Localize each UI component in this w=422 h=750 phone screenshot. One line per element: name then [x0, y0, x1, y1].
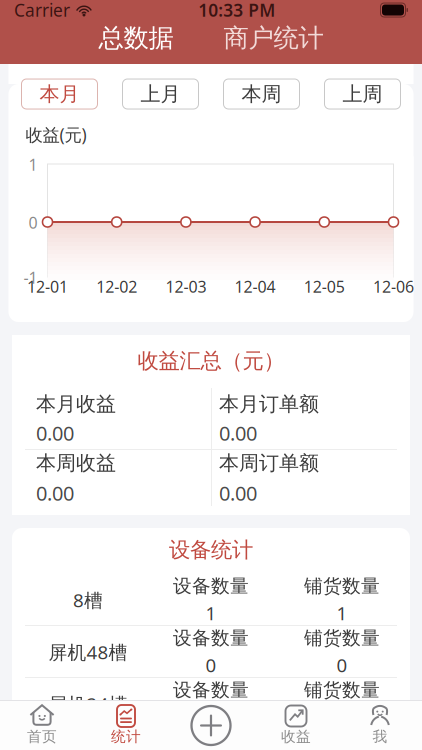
- staticText: 0.00: [219, 420, 257, 446]
- staticText: 收益: [281, 727, 311, 745]
- staticText: 收益汇总（元）: [137, 348, 284, 374]
- staticText: 12-05: [304, 276, 345, 297]
- button[interactable]: 上月: [122, 79, 198, 109]
- staticText: 0: [205, 705, 216, 729]
- button[interactable]: 我: [338, 699, 422, 750]
- staticText: 设备数量: [173, 575, 249, 598]
- staticText: 铺货数量: [304, 679, 380, 702]
- button[interactable]: 本月: [21, 79, 97, 109]
- button[interactable]: 商户统计: [219, 25, 327, 51]
- staticText: 总数据: [98, 22, 173, 53]
- staticText: 12-02: [96, 276, 137, 297]
- staticText: 首页: [27, 727, 57, 745]
- staticText: 0: [336, 653, 347, 677]
- staticText: 上月: [140, 82, 180, 106]
- staticText: 12-04: [235, 276, 276, 297]
- staticText: 本月订单额: [219, 392, 319, 416]
- staticText: 本月收益: [36, 392, 116, 416]
- staticText: 商户统计: [223, 22, 323, 53]
- staticText: 0.00: [219, 480, 257, 506]
- staticText: 本月: [39, 82, 79, 106]
- staticText: 0: [28, 212, 37, 233]
- button[interactable]: 首页: [0, 699, 84, 750]
- staticText: 10:33 PM: [198, 0, 275, 21]
- staticText: Carrier: [14, 0, 70, 21]
- button[interactable]: 总数据: [94, 25, 177, 51]
- staticText: 设备统计: [169, 537, 253, 563]
- staticText: 上周: [342, 82, 382, 106]
- staticText: 设备数量: [173, 627, 249, 650]
- staticText: 铺货数量: [304, 627, 380, 650]
- staticText: 屏机48槽: [48, 640, 127, 664]
- staticText: 本周订单额: [219, 451, 319, 475]
- staticText: 铺货数量: [304, 575, 380, 598]
- staticText: 收益(元): [25, 123, 86, 146]
- button[interactable]: 添加: [168, 701, 254, 750]
- staticText: 统计: [111, 727, 141, 745]
- staticText: 12-03: [165, 276, 206, 297]
- staticText: 我: [372, 727, 387, 745]
- staticText: 0.00: [36, 420, 74, 446]
- staticText: 0: [205, 653, 216, 677]
- staticText: 1: [336, 601, 347, 625]
- staticText: 本周收益: [36, 451, 116, 475]
- staticText: 8槽: [73, 588, 103, 612]
- button[interactable]: 上周: [324, 79, 400, 109]
- button[interactable]: 本周: [223, 79, 299, 109]
- button[interactable]: 统计: [84, 699, 168, 750]
- staticText: 设备数量: [173, 679, 249, 702]
- staticText: 0.00: [36, 480, 74, 506]
- staticText: 12-01: [27, 276, 68, 297]
- staticText: 屏机24槽: [48, 692, 127, 716]
- staticText: 1: [205, 601, 216, 625]
- staticText: 1: [28, 154, 37, 175]
- button[interactable]: 收益: [254, 699, 338, 750]
- staticText: -1: [23, 267, 37, 288]
- staticText: 12-06: [373, 276, 414, 297]
- staticText: 本周: [241, 82, 281, 106]
